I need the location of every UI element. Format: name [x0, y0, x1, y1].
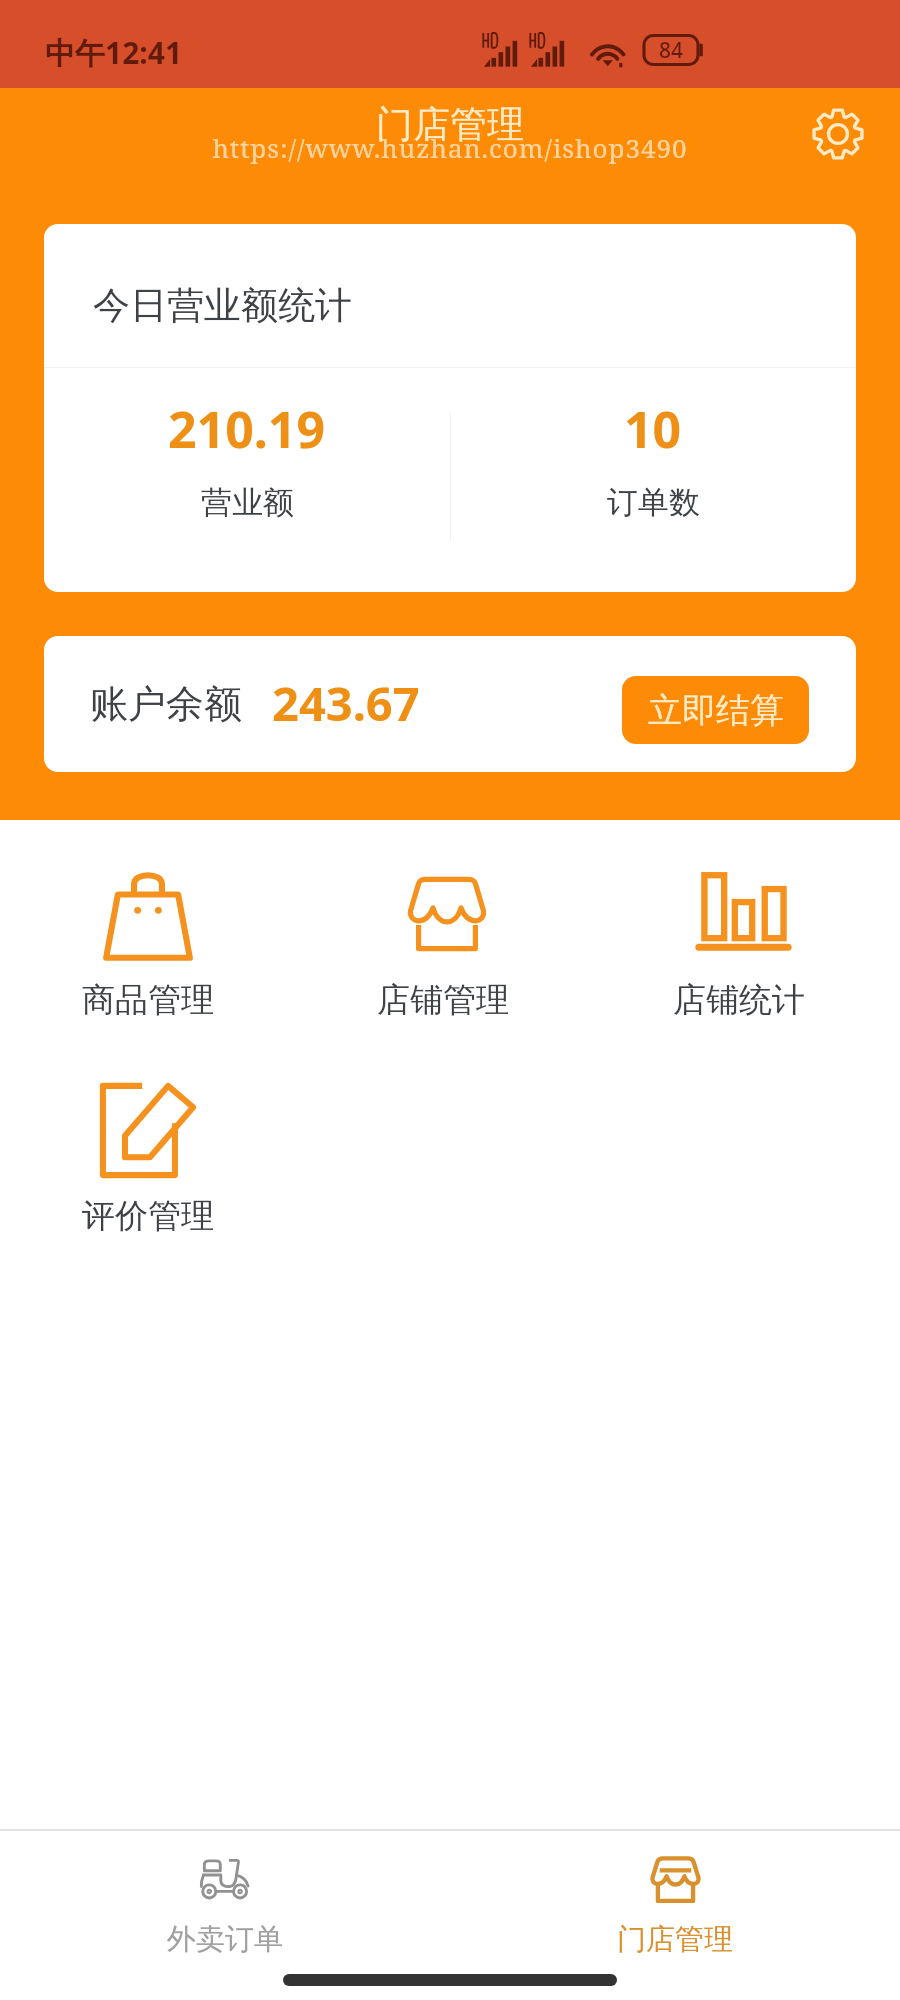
staticText: 评价管理 [82, 1195, 214, 1237]
button[interactable]: 店铺统计 [591, 864, 887, 1021]
staticText: 门店管理 [376, 101, 524, 148]
staticText: 外卖订单 [167, 1921, 283, 1958]
staticText: 营业额 [201, 483, 294, 522]
staticText: 立即结算 [648, 689, 784, 732]
button[interactable]: 商品管理 [0, 864, 295, 1021]
button[interactable]: 店铺管理 [295, 864, 591, 1021]
staticText: 店铺管理 [377, 979, 509, 1021]
button[interactable]: 外卖订单 [0, 1831, 450, 1971]
staticText: https://www.huzhan.com/ishop3490 [212, 130, 688, 165]
button[interactable]: 门店管理 [450, 1831, 900, 1971]
staticText: 243.67 [272, 671, 420, 735]
button[interactable]: 立即结算 [622, 676, 809, 744]
staticText: 210.19 [168, 395, 326, 463]
button[interactable]: Settings [806, 102, 870, 166]
staticText: 门店管理 [617, 1921, 733, 1958]
staticText: 商品管理 [82, 979, 214, 1021]
staticText: 订单数 [607, 483, 700, 522]
staticText: 10 [624, 395, 682, 463]
staticText: 中午12:41 [45, 32, 183, 73]
staticText: 账户余额 [90, 680, 242, 728]
staticText: 店铺统计 [673, 979, 805, 1021]
staticText: 今日营业额统计 [93, 282, 352, 329]
button[interactable]: 评价管理 [0, 1080, 295, 1237]
staticText: 84 [659, 36, 684, 65]
